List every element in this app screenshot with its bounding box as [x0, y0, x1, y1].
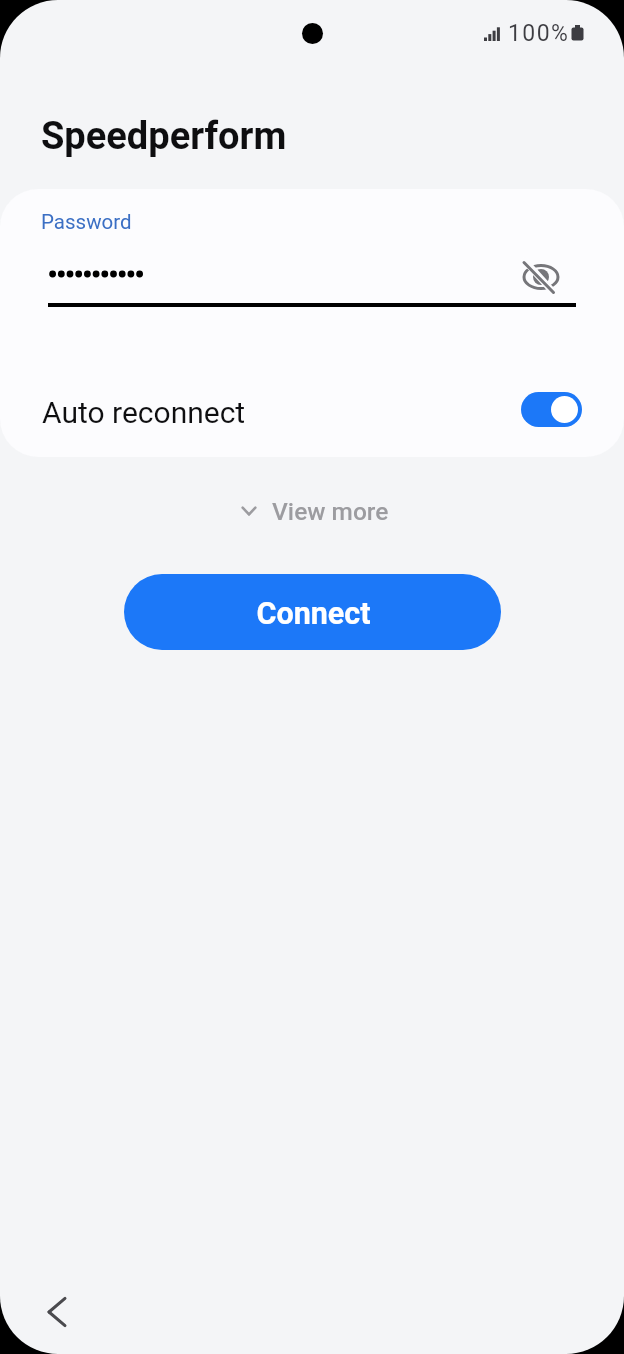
staticText: Connect — [256, 596, 371, 632]
staticText: Password — [41, 210, 132, 234]
button[interactable]: Back — [30, 1286, 82, 1338]
button[interactable]: Connect — [124, 574, 501, 650]
button[interactable]: View more — [233, 492, 395, 530]
staticText: View more — [272, 497, 389, 526]
staticText: Auto reconnect — [42, 395, 246, 430]
button[interactable]: Auto reconnect — [521, 392, 582, 427]
button[interactable]: Show password — [517, 253, 565, 301]
staticText: 100% — [508, 20, 570, 47]
staticText: Speedperform — [41, 114, 287, 159]
